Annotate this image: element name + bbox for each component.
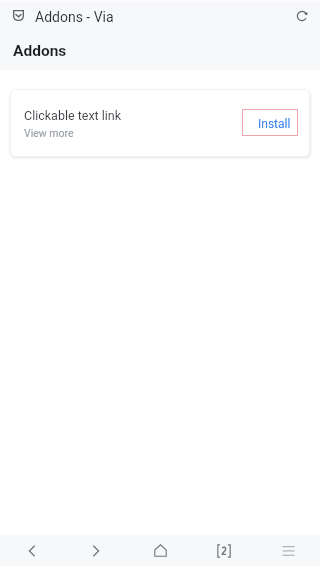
button[interactable]: Site information xyxy=(8,5,28,25)
button[interactable]: Tabs xyxy=(192,535,256,566)
staticText: Addons - Via xyxy=(35,9,114,25)
button[interactable]: Forward xyxy=(64,535,128,566)
button[interactable]: Home xyxy=(128,535,192,566)
staticText: Install xyxy=(258,117,291,131)
button[interactable]: View more xyxy=(24,127,74,139)
button[interactable]: Clickable text link xyxy=(24,108,122,123)
button[interactable]: Back xyxy=(0,535,64,566)
button[interactable]: Refresh xyxy=(291,5,313,27)
staticText: Addons xyxy=(13,42,67,60)
button[interactable]: Menu xyxy=(256,535,320,566)
button[interactable]: Install xyxy=(242,109,298,136)
